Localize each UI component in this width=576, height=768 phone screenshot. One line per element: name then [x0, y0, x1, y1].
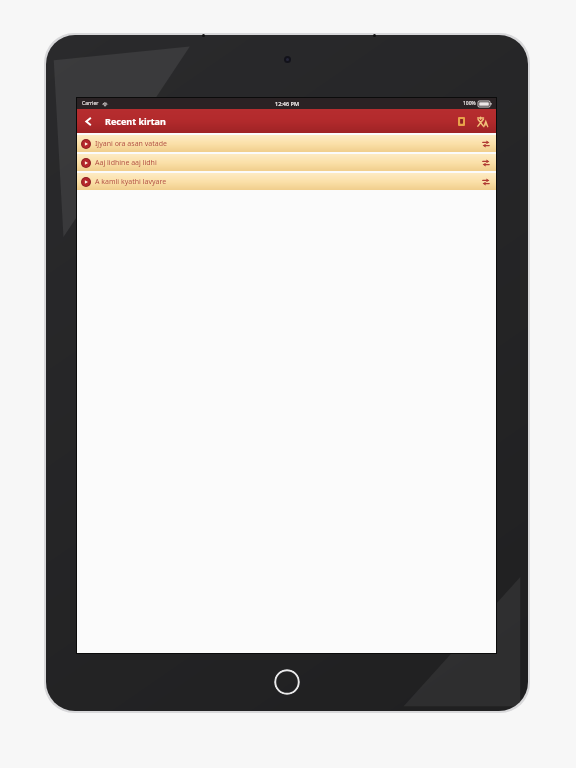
button[interactable]: Ijyani ora asan vatade	[77, 135, 496, 152]
staticText: Aaj lidhine aaj lidhi	[95, 158, 478, 168]
button[interactable]: A kamli kyathi lavyare	[77, 173, 496, 190]
staticText: Carrier	[82, 100, 99, 107]
button[interactable]: Language	[473, 111, 491, 131]
staticText: 12:46 PM	[275, 100, 299, 107]
button[interactable]: Expand	[478, 173, 494, 190]
staticText: Ijyani ora asan vatade	[95, 139, 478, 149]
button[interactable]: Home	[274, 669, 300, 695]
button[interactable]: Expand	[478, 135, 494, 152]
staticText: 100%	[463, 100, 476, 107]
button[interactable]: Expand	[478, 154, 494, 171]
staticText: A kamli kyathi lavyare	[95, 177, 478, 187]
button[interactable]: Book	[453, 111, 469, 131]
button[interactable]: Back	[79, 109, 97, 133]
staticText: Recent kirtan	[105, 115, 166, 127]
button[interactable]: Aaj lidhine aaj lidhi	[77, 154, 496, 171]
